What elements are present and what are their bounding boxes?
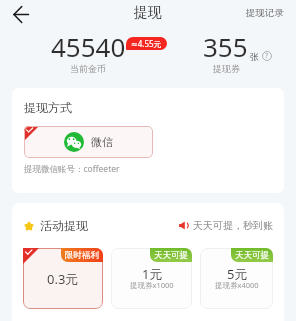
button[interactable]: 0.3元 xyxy=(23,248,103,309)
staticText: 微信 xyxy=(91,135,113,149)
staticText: 提现方式 xyxy=(24,100,72,115)
staticText: 天天可提 xyxy=(154,250,188,261)
staticText: 1元 xyxy=(142,265,163,283)
staticText: 提现 xyxy=(134,4,162,22)
staticText: 天天可提 xyxy=(235,250,269,261)
staticText: 天天可提，秒到账 xyxy=(193,219,273,232)
staticText: 355 xyxy=(203,29,248,64)
staticText: 提现微信账号：coffeeter xyxy=(24,163,120,175)
button[interactable]: 提现记录 xyxy=(234,1,296,25)
button[interactable]: Help xyxy=(262,51,272,61)
button[interactable]: Back xyxy=(9,1,35,27)
staticText: 5元 xyxy=(227,265,248,283)
staticText: 45540 xyxy=(51,29,126,64)
staticText: 提现券x4000 xyxy=(215,280,259,290)
staticText: 活动提现 xyxy=(40,218,88,233)
button[interactable]: 1元 xyxy=(111,248,192,309)
staticText: 0.3元 xyxy=(47,270,79,288)
staticText: 当前金币 xyxy=(70,63,106,74)
button[interactable]: 5元 xyxy=(200,248,273,309)
staticText: 提现券x1000 xyxy=(130,280,174,290)
staticText: 提现券 xyxy=(213,63,240,74)
staticText: 提现记录 xyxy=(246,7,284,19)
staticText: ≈4.55元 xyxy=(131,38,162,49)
button[interactable]: 微信 xyxy=(24,126,153,158)
staticText: 限时福利 xyxy=(65,250,99,261)
staticText: 张 xyxy=(250,51,259,62)
staticText: ? xyxy=(265,51,269,61)
